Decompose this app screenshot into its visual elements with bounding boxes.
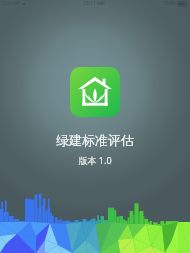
staticText: 100% bbox=[163, 0, 176, 7]
staticText: Carrier bbox=[3, 0, 20, 7]
button[interactable]: 绿建标准评估 bbox=[70, 67, 120, 117]
staticText: 版本 1.0 bbox=[78, 154, 112, 166]
staticText: 10:11 AM bbox=[83, 0, 105, 7]
staticText: 绿建标准评估 bbox=[56, 132, 134, 148]
